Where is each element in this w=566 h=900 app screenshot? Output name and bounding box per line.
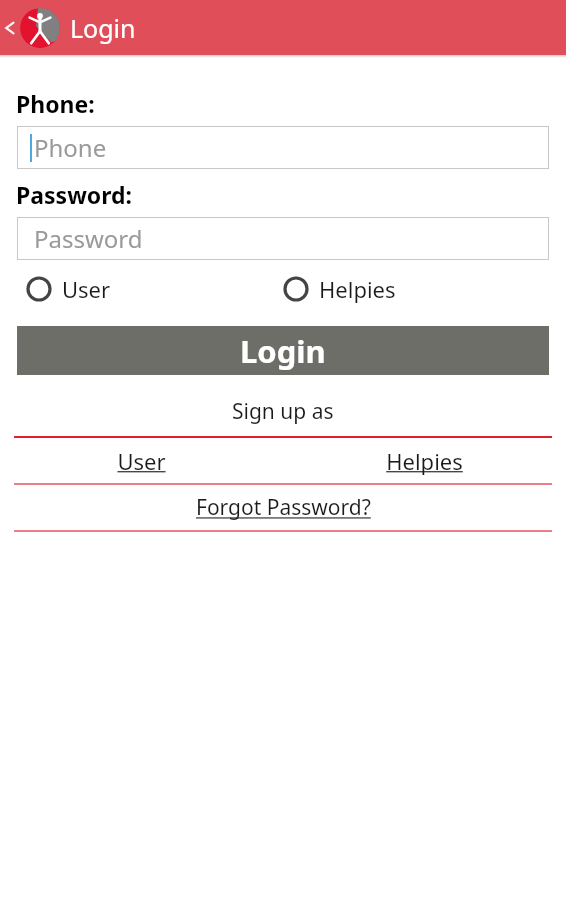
staticText: User [62, 274, 111, 304]
button[interactable]: User [26, 274, 283, 304]
staticText: Login [70, 11, 136, 45]
staticText: Login [240, 330, 326, 372]
button[interactable]: Login [17, 326, 549, 375]
staticText: Password: [16, 179, 133, 210]
staticText: Forgot Password? [196, 493, 371, 522]
button[interactable]: Helpies [283, 274, 540, 304]
staticText: Sign up as [232, 397, 334, 426]
button[interactable]: Forgot Password? [0, 485, 566, 530]
staticText: User [117, 446, 166, 476]
button[interactable]: Helpies [283, 438, 566, 483]
button[interactable]: Back [0, 0, 18, 55]
staticText: Password [34, 222, 143, 255]
staticText: Helpies [319, 274, 396, 304]
staticText: Phone [34, 131, 107, 164]
button[interactable]: User [0, 438, 283, 483]
button[interactable]: Phone [17, 126, 549, 169]
staticText: Helpies [386, 446, 463, 476]
staticText: Phone: [16, 88, 95, 119]
button[interactable]: Password [17, 217, 549, 260]
